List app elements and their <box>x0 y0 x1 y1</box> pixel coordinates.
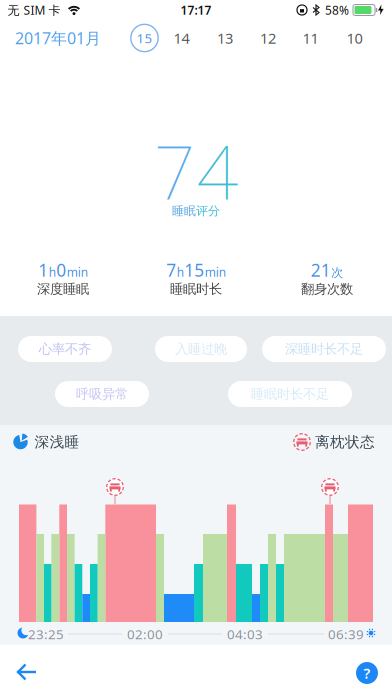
staticText: 睡眠时长 <box>170 281 222 297</box>
button[interactable]: 11 <box>295 23 325 53</box>
staticText: 入睡过晚 <box>175 341 227 357</box>
button[interactable]: Back <box>18 664 36 680</box>
staticText: 58% <box>325 2 349 18</box>
staticText: 次 <box>331 265 343 280</box>
staticText: 15 <box>184 258 204 281</box>
staticText: 7 <box>153 122 195 220</box>
button[interactable]: 2017年01月 <box>0 23 118 53</box>
staticText: 深浅睡 <box>34 433 79 451</box>
staticText: 离枕状态 <box>315 433 375 451</box>
button[interactable]: 14 <box>166 23 196 53</box>
button[interactable]: 10 <box>339 23 369 53</box>
staticText: 翻身次数 <box>301 281 353 297</box>
staticText: 1 <box>38 258 48 281</box>
staticText: 02:00 <box>127 625 163 643</box>
staticText: 14 <box>173 28 189 48</box>
button[interactable]: 12 <box>253 23 283 53</box>
staticText: 7 <box>166 258 176 281</box>
staticText: 23:25 <box>28 625 64 643</box>
button[interactable]: 13 <box>210 23 240 53</box>
staticText: 04:03 <box>227 625 263 643</box>
staticText: 11 <box>302 28 318 48</box>
staticText: 呼吸异常 <box>76 386 128 402</box>
staticText: 06:39 <box>328 625 364 643</box>
staticText: 21 <box>311 258 331 281</box>
staticText: 2017年01月 <box>15 27 101 49</box>
staticText: 17:17 <box>180 2 211 18</box>
staticText: h <box>177 264 184 280</box>
staticText: 10 <box>346 28 362 48</box>
staticText: min <box>205 264 226 280</box>
staticText: ? <box>363 663 370 683</box>
button[interactable]: 15 <box>130 23 159 52</box>
button[interactable]: Help <box>356 662 378 684</box>
staticText: 心率不齐 <box>39 341 91 357</box>
staticText: 15 <box>136 29 152 47</box>
staticText: 0 <box>56 258 66 281</box>
staticText: 睡眠 <box>172 204 196 218</box>
staticText: 睡眠时长不足 <box>251 386 329 402</box>
staticText: 13 <box>217 28 233 48</box>
staticText: 4 <box>196 122 238 220</box>
staticText: 深睡时长不足 <box>285 341 363 357</box>
staticText: 评分 <box>196 204 220 218</box>
staticText: min <box>67 264 88 280</box>
staticText: 12 <box>260 28 276 48</box>
staticText: 深度睡眠 <box>37 281 89 297</box>
staticText: 无 SIM 卡 <box>7 2 60 18</box>
staticText: h <box>49 264 56 280</box>
